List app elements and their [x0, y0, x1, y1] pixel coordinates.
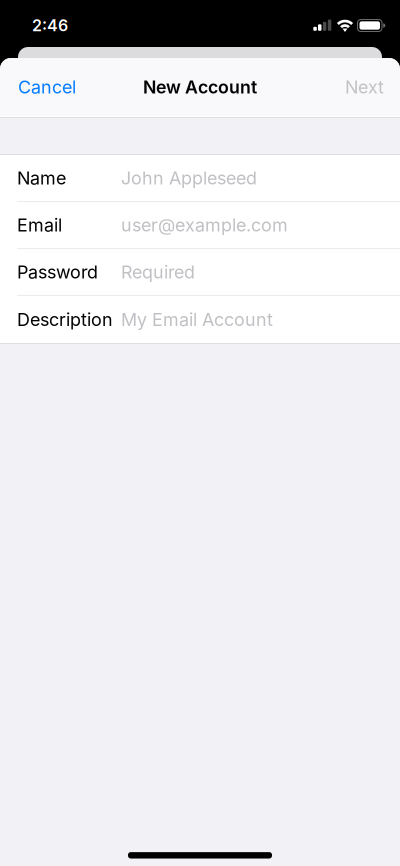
staticText: Password: [17, 261, 98, 283]
staticText: New Account: [143, 76, 257, 98]
staticText: user@example.com: [121, 214, 288, 236]
button[interactable]: Next: [302, 65, 400, 109]
staticText: My Email Account: [121, 309, 273, 330]
button[interactable]: Description: [0, 296, 400, 343]
staticText: Name: [17, 167, 66, 189]
button[interactable]: Password: [0, 249, 400, 296]
staticText: 2:46: [32, 16, 68, 35]
button[interactable]: Name: [0, 155, 400, 202]
staticText: Required: [121, 261, 195, 283]
staticText: Email: [17, 214, 62, 236]
staticText: Description: [17, 309, 113, 330]
button[interactable]: Email: [0, 202, 400, 249]
button[interactable]: Cancel: [0, 65, 110, 109]
staticText: Cancel: [18, 76, 76, 98]
staticText: Next: [345, 76, 384, 98]
staticText: John Appleseed: [121, 167, 257, 189]
